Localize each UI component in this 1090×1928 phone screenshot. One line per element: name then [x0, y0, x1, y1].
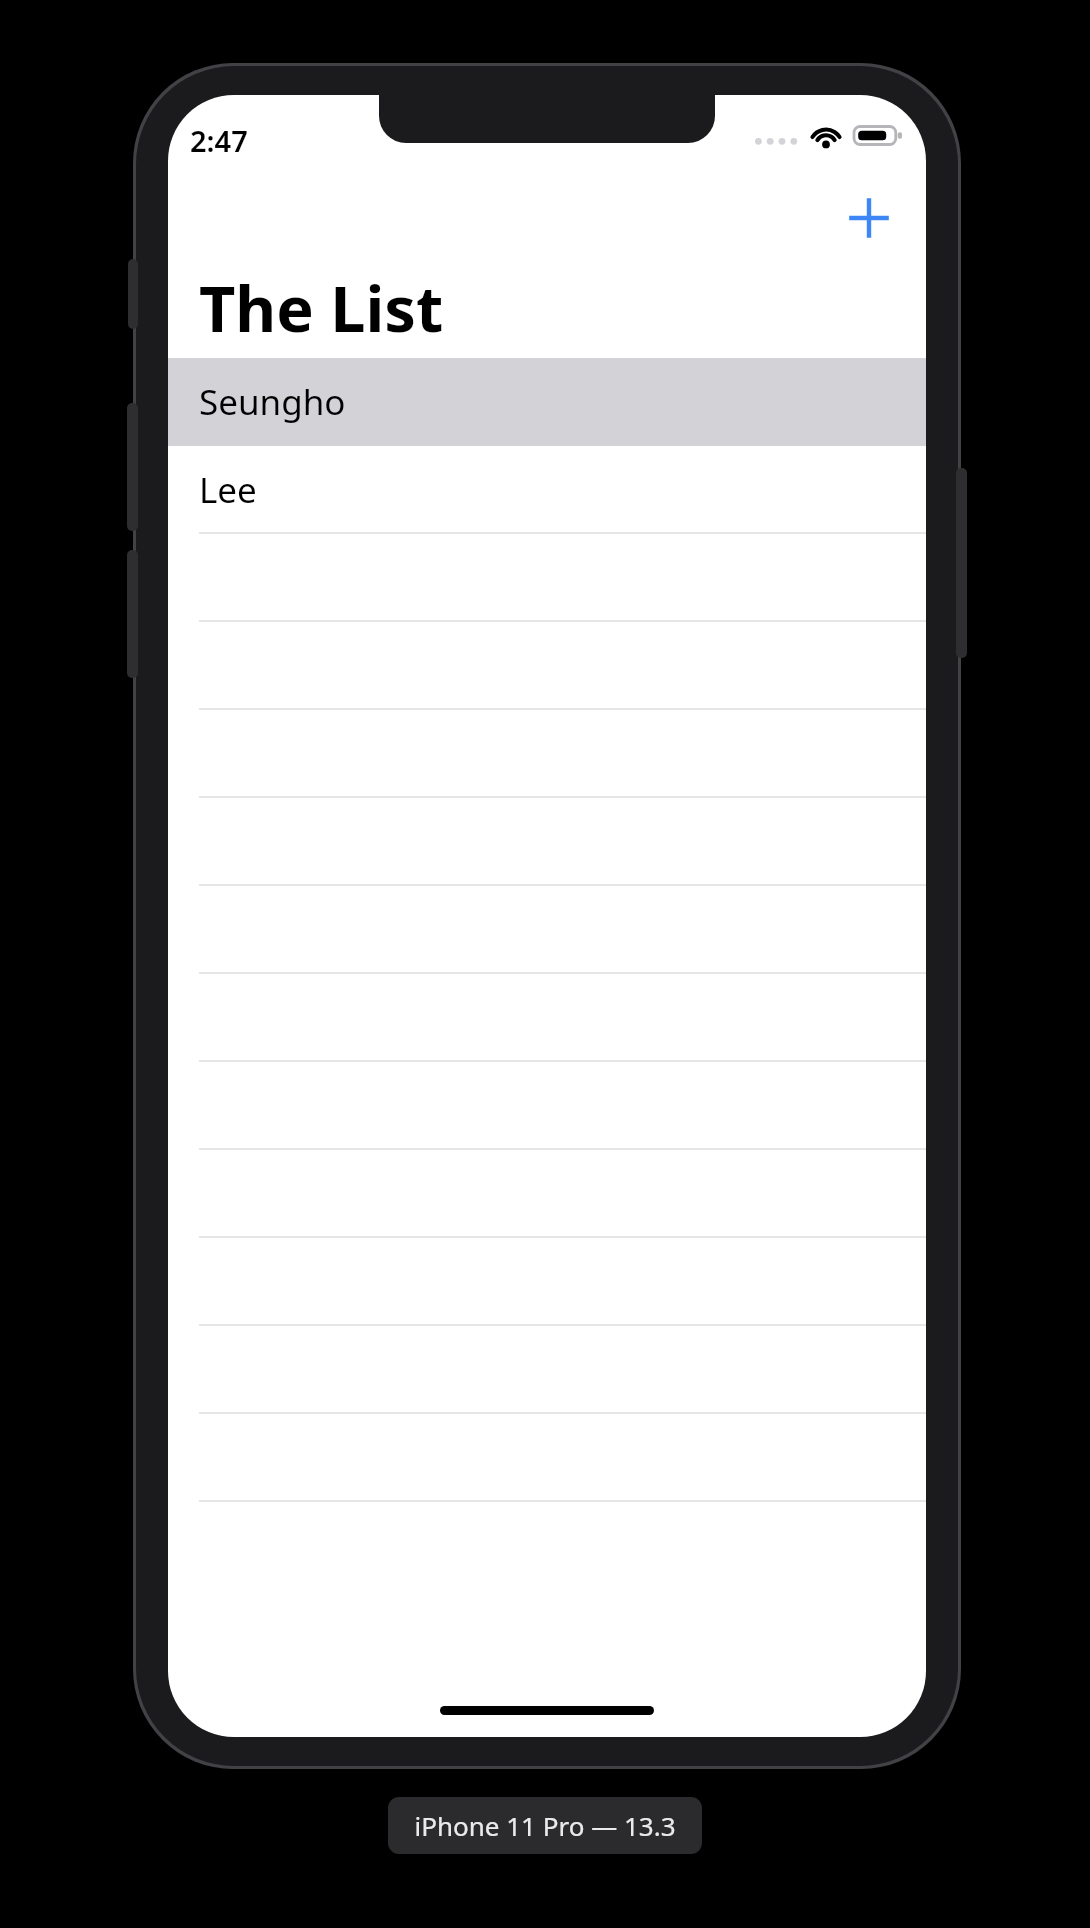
staticText: iPhone 11 Pro — 13.3	[414, 1808, 676, 1843]
button[interactable]: Lee	[168, 446, 926, 534]
staticText: The List	[199, 265, 444, 351]
button[interactable]: iPhone 11 Pro — 13.3	[388, 1797, 702, 1854]
staticText: Lee	[199, 466, 257, 514]
staticText: 2:47	[190, 121, 248, 160]
button[interactable]: Add	[838, 187, 900, 249]
button[interactable]: Seungho	[168, 358, 926, 446]
staticText: Seungho	[199, 378, 346, 426]
